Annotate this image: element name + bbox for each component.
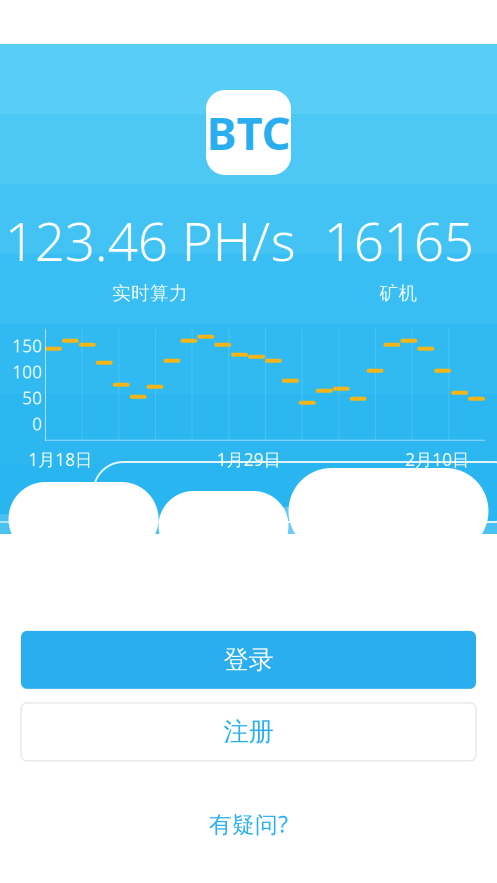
staticText: 注册: [223, 716, 273, 747]
staticText: 123.46 PH/s: [4, 205, 295, 276]
button[interactable]: 注册: [21, 703, 476, 761]
staticText: 100: [12, 360, 42, 383]
staticText: 0: [32, 412, 42, 435]
staticText: 1月29日: [216, 448, 280, 471]
button[interactable]: 有疑问?: [191, 801, 306, 847]
staticText: 有疑问?: [209, 809, 288, 839]
staticText: 矿机: [379, 282, 417, 305]
staticText: 50: [22, 386, 42, 409]
staticText: 登录: [223, 644, 273, 675]
staticText: 1月18日: [28, 448, 92, 471]
staticText: BTC: [206, 102, 290, 163]
staticText: 实时算力: [112, 282, 188, 305]
button[interactable]: 登录: [21, 631, 476, 689]
staticText: 16165: [323, 205, 473, 276]
staticText: 150: [12, 334, 42, 357]
staticText: 2月10日: [405, 448, 469, 471]
